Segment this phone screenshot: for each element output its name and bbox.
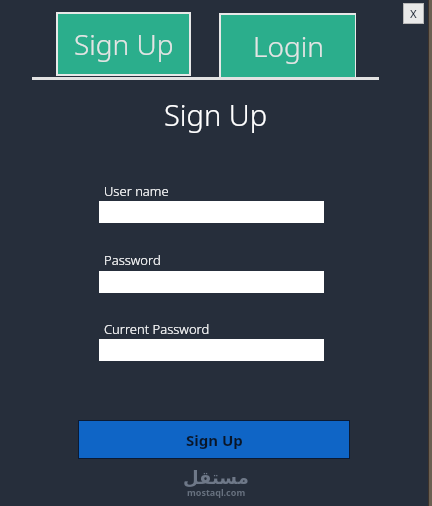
staticText: مستقل — [183, 467, 249, 488]
staticText: mostaql.com — [187, 486, 246, 498]
staticText: Login — [253, 27, 324, 65]
button[interactable]: Login — [219, 13, 356, 78]
staticText: Sign Up — [186, 430, 243, 450]
staticText: X — [410, 6, 417, 21]
staticText: Sign Up — [74, 25, 174, 63]
button[interactable]: Sign Up — [78, 420, 350, 459]
staticText: User name — [104, 182, 169, 200]
button[interactable]: X — [403, 3, 424, 24]
button[interactable]: Sign Up — [56, 12, 191, 76]
staticText: Password — [104, 251, 161, 269]
staticText: Current Password — [104, 320, 210, 338]
staticText: Sign Up — [164, 95, 268, 134]
